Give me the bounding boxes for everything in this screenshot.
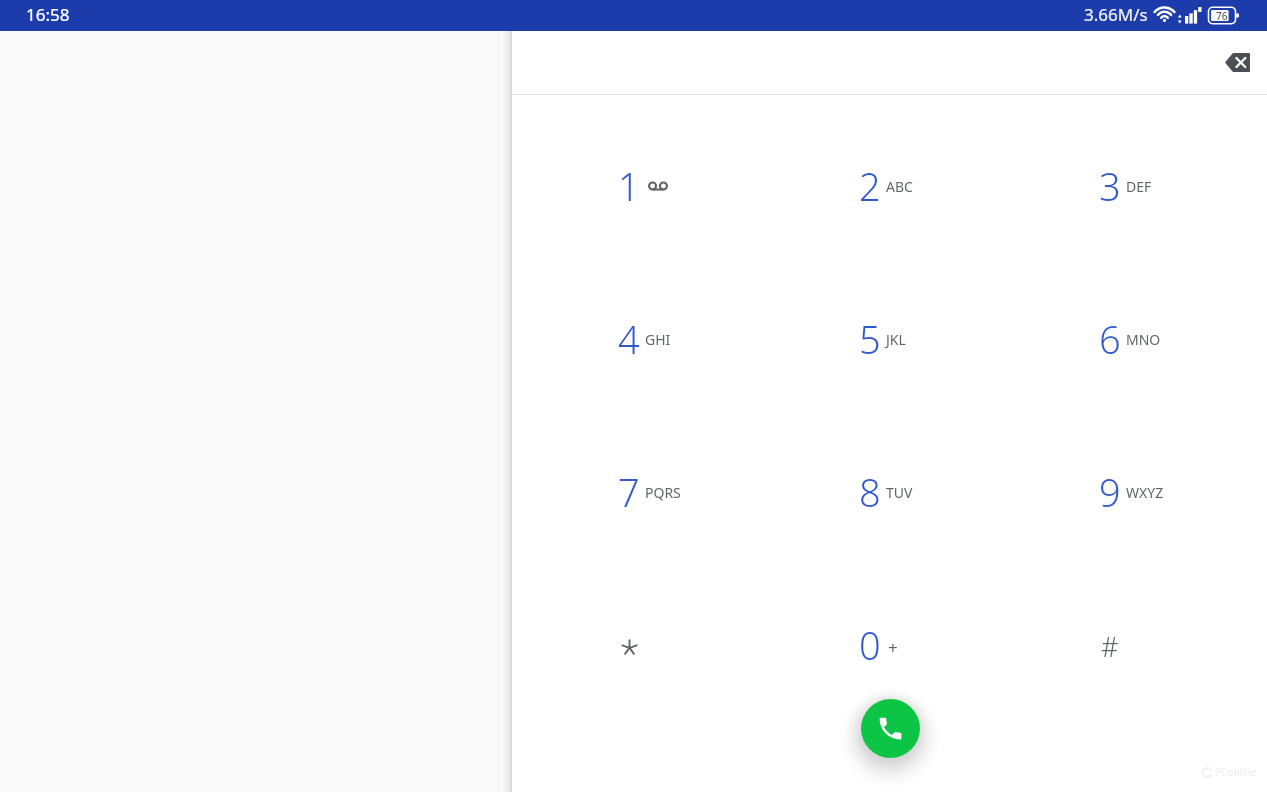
button[interactable]: #: [990, 570, 1230, 722]
staticText: DEF: [1126, 177, 1152, 196]
staticText: 8: [859, 466, 881, 518]
button[interactable]: 0: [750, 570, 990, 722]
staticText: PConline: [1215, 765, 1257, 779]
staticText: +: [888, 636, 898, 659]
staticText: MNO: [1126, 330, 1161, 349]
button[interactable]: 5: [750, 264, 990, 416]
staticText: 9: [1099, 466, 1121, 518]
staticText: 7: [618, 466, 640, 518]
button[interactable]: Call: [861, 699, 920, 758]
staticText: TUV: [886, 483, 913, 502]
staticText: 1: [618, 160, 640, 212]
staticText: GHI: [645, 330, 671, 349]
staticText: 3: [1099, 160, 1121, 212]
staticText: ABC: [886, 177, 913, 196]
button[interactable]: 9: [990, 417, 1230, 569]
button[interactable]: 8: [750, 417, 990, 569]
button[interactable]: [509, 570, 749, 722]
staticText: #: [1101, 628, 1119, 665]
staticText: 0: [859, 619, 881, 671]
button[interactable]: Backspace: [1213, 38, 1262, 87]
staticText: 5: [859, 313, 881, 365]
button[interactable]: 6: [990, 264, 1230, 416]
staticText: 3.66M/s: [1084, 3, 1148, 26]
button[interactable]: 1: [509, 111, 749, 263]
staticText: 76: [1216, 9, 1228, 23]
button[interactable]: 4: [509, 264, 749, 416]
staticText: JKL: [886, 330, 906, 349]
staticText: 2: [859, 160, 881, 212]
button[interactable]: 2: [750, 111, 990, 263]
staticText: WXYZ: [1126, 483, 1164, 502]
staticText: 16:58: [26, 3, 70, 26]
button[interactable]: 7: [509, 417, 749, 569]
staticText: PQRS: [645, 483, 681, 502]
staticText: 4: [618, 313, 640, 365]
button[interactable]: 3: [990, 111, 1230, 263]
staticText: 6: [1099, 313, 1121, 365]
